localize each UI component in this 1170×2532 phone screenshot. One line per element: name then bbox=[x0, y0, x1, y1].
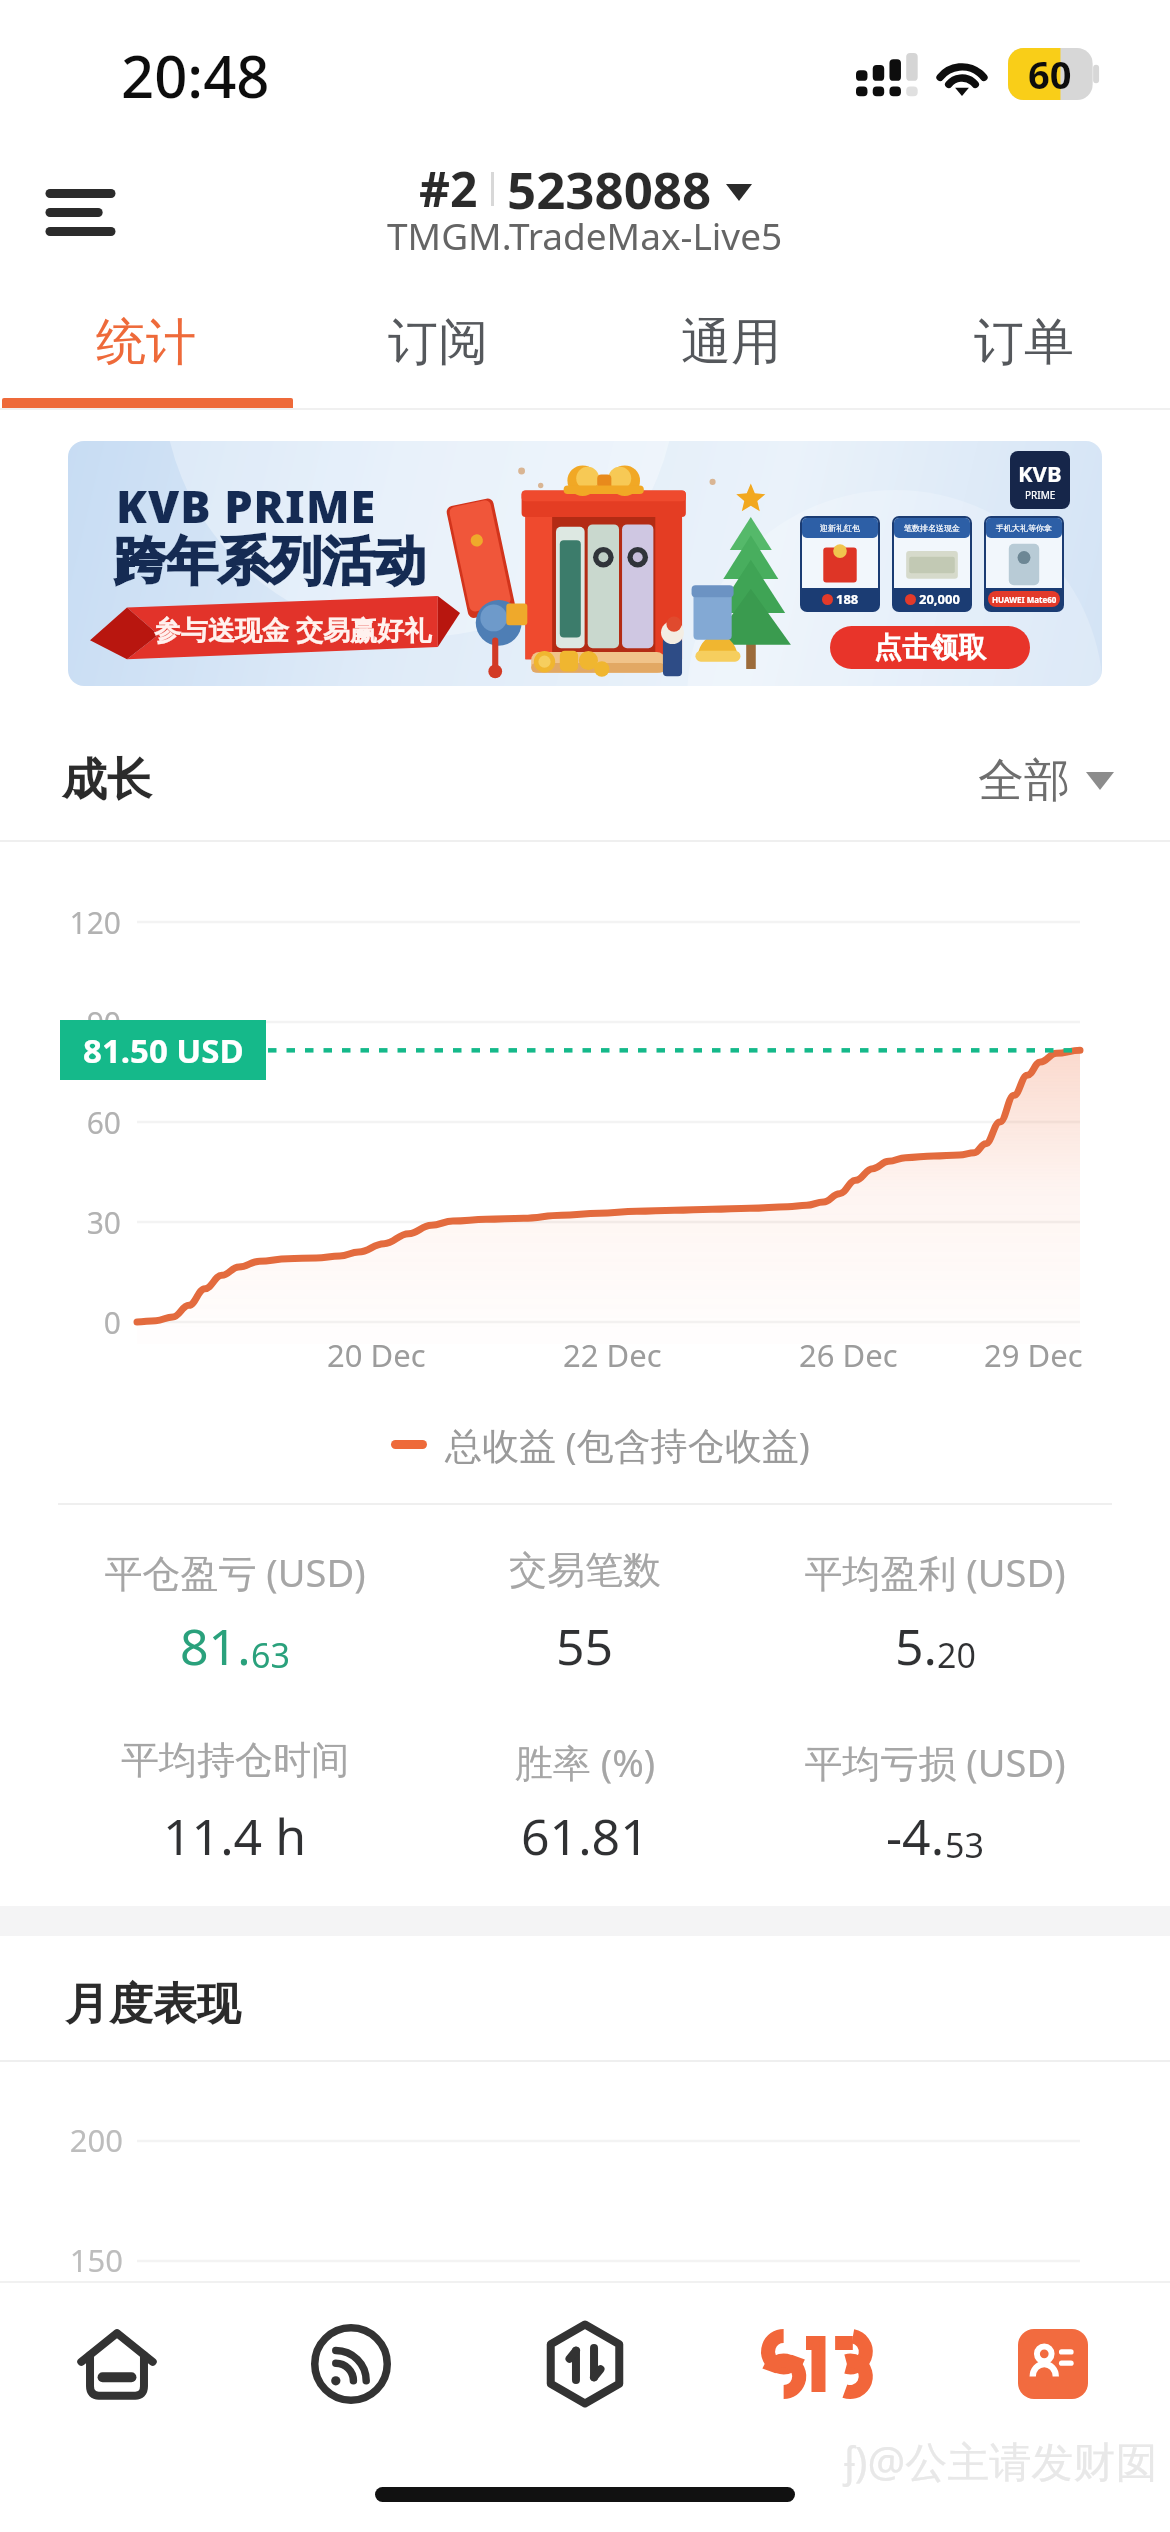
staticText: 150 bbox=[2, 2239, 123, 2281]
staticText: 20,000 bbox=[919, 590, 960, 608]
staticText: 22 Dec bbox=[563, 1334, 662, 1376]
staticText: 胜率 (%) bbox=[335, 1736, 835, 1788]
button[interactable]: 通用 bbox=[584, 284, 877, 410]
staticText: 全部 bbox=[978, 752, 1070, 810]
button[interactable]: Trade bbox=[468, 2283, 702, 2445]
staticText: 30 bbox=[0, 1202, 121, 1243]
button[interactable]: Signals bbox=[234, 2283, 468, 2445]
staticText: HUAWEI Mate60 bbox=[992, 594, 1057, 605]
staticText: ʄ)@公主请发财囡 bbox=[844, 2432, 1158, 2489]
staticText: 20 bbox=[937, 1632, 976, 1678]
staticText: 成长 bbox=[62, 752, 152, 809]
staticText: -4. bbox=[886, 1802, 945, 1870]
button[interactable]: 全部 bbox=[978, 752, 1114, 810]
staticText: 29 Dec bbox=[984, 1334, 1083, 1376]
staticText: 统计 bbox=[96, 311, 196, 374]
button[interactable]: Menu bbox=[25, 160, 135, 264]
staticText: 63 bbox=[251, 1632, 290, 1678]
staticText: 0 bbox=[0, 1302, 121, 1343]
staticText: 81. bbox=[180, 1612, 251, 1680]
staticText: 参与送现金 交易赢好礼 bbox=[154, 611, 432, 648]
staticText: 总收益 (包含持仓收益) bbox=[445, 1419, 810, 1470]
button[interactable]: #2 bbox=[387, 154, 783, 273]
staticText: 平均持仓时间 bbox=[0, 1736, 485, 1784]
staticText: 平仓盈亏 (USD) bbox=[0, 1546, 485, 1598]
staticText: 订单 bbox=[974, 311, 1074, 374]
button[interactable]: 订单 bbox=[877, 284, 1170, 410]
staticText: 手机大礼等你拿 bbox=[996, 523, 1052, 533]
staticText: 点击领取 bbox=[874, 630, 986, 665]
staticText: TMGM.TradeMax-Live5 bbox=[387, 210, 783, 260]
button[interactable]: 统计 bbox=[0, 284, 292, 410]
staticText: 90 bbox=[0, 1002, 121, 1043]
staticText: 平均亏损 (USD) bbox=[685, 1736, 1170, 1788]
staticText: 交易笔数 bbox=[335, 1546, 835, 1594]
staticText: KVB bbox=[1018, 458, 1062, 488]
button[interactable]: KVB PRIME bbox=[68, 441, 1102, 686]
button[interactable]: Home bbox=[0, 2283, 234, 2445]
staticText: 81.50 USD bbox=[83, 1028, 244, 1073]
staticText: 61.81 bbox=[521, 1802, 649, 1870]
button[interactable]: S13 bbox=[702, 2283, 936, 2445]
staticText: PRIME bbox=[1025, 488, 1056, 502]
staticText: 200 bbox=[2, 2119, 123, 2161]
button[interactable]: 订阅 bbox=[292, 284, 584, 410]
staticText: 20 Dec bbox=[327, 1334, 426, 1376]
staticText: 订阅 bbox=[388, 311, 488, 374]
staticText: 月度表现 bbox=[65, 1977, 241, 2032]
staticText: KVB PRIME bbox=[116, 475, 377, 536]
staticText: 通用 bbox=[681, 311, 781, 374]
staticText: 迎新礼红包 bbox=[820, 523, 860, 533]
button[interactable]: 点击领取 bbox=[830, 626, 1030, 669]
staticText: 11.4 h bbox=[163, 1802, 307, 1870]
staticText: 26 Dec bbox=[799, 1334, 898, 1376]
staticText: 5. bbox=[895, 1612, 937, 1680]
staticText: 20:48 bbox=[121, 36, 270, 115]
staticText: 跨年系列活动 bbox=[114, 529, 426, 595]
staticText: 5238088 bbox=[507, 154, 712, 223]
staticText: 60 bbox=[0, 1102, 121, 1143]
staticText: 笔数排名送现金 bbox=[904, 523, 960, 533]
staticText: 平均盈利 (USD) bbox=[685, 1546, 1170, 1598]
staticText: 55 bbox=[556, 1612, 614, 1680]
button[interactable]: Profile bbox=[936, 2283, 1170, 2445]
staticText: #2 bbox=[419, 156, 478, 221]
staticText: 188 bbox=[836, 590, 859, 608]
staticText: 53 bbox=[945, 1822, 984, 1868]
staticText: 120 bbox=[0, 902, 121, 943]
staticText: 60 bbox=[1028, 48, 1072, 100]
